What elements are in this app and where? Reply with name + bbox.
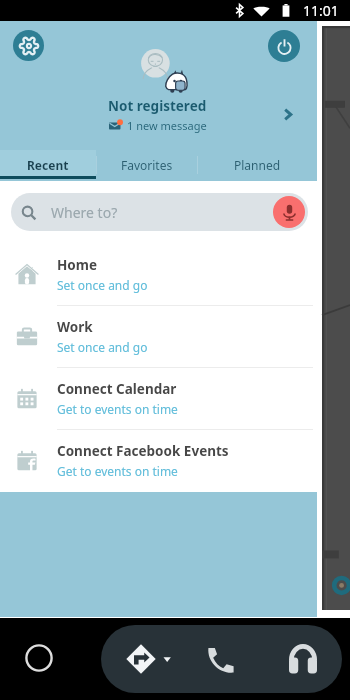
staticText: Work (57, 318, 93, 336)
button[interactable]: Audio (273, 625, 333, 693)
staticText: Planned (234, 157, 281, 173)
button[interactable]: Call (191, 625, 251, 693)
button[interactable]: Home (0, 244, 317, 305)
staticText: Connect Facebook Events (57, 442, 229, 460)
button[interactable]: Planned (197, 150, 317, 179)
button[interactable]: Navigate (116, 625, 181, 693)
staticText: Connect Calendar (57, 380, 177, 398)
button[interactable]: Voice search (273, 196, 305, 228)
staticText: Set once and go (57, 339, 148, 355)
staticText: 11:01 (303, 1, 339, 20)
staticText: Not registered (108, 97, 207, 115)
staticText: Favorites (121, 157, 173, 173)
button[interactable]: Recent (0, 150, 96, 179)
button[interactable]: Power (268, 30, 300, 62)
button[interactable]: Settings (13, 30, 44, 61)
button[interactable]: Connect Calendar (0, 368, 317, 429)
staticText: Recent (27, 157, 69, 173)
button[interactable]: Where to? (11, 193, 308, 231)
button[interactable]: Home (25, 644, 53, 672)
staticText: 1 new message (127, 118, 207, 133)
staticText: Set once and go (57, 277, 148, 293)
staticText: Where to? (51, 203, 118, 222)
button[interactable]: Work (0, 306, 317, 367)
staticText: Home (57, 256, 97, 274)
staticText: Get to events on time (57, 401, 178, 417)
button[interactable]: Connect Facebook Events (0, 430, 317, 491)
button[interactable]: Favorites (96, 150, 197, 179)
staticText: Get to events on time (57, 463, 178, 479)
